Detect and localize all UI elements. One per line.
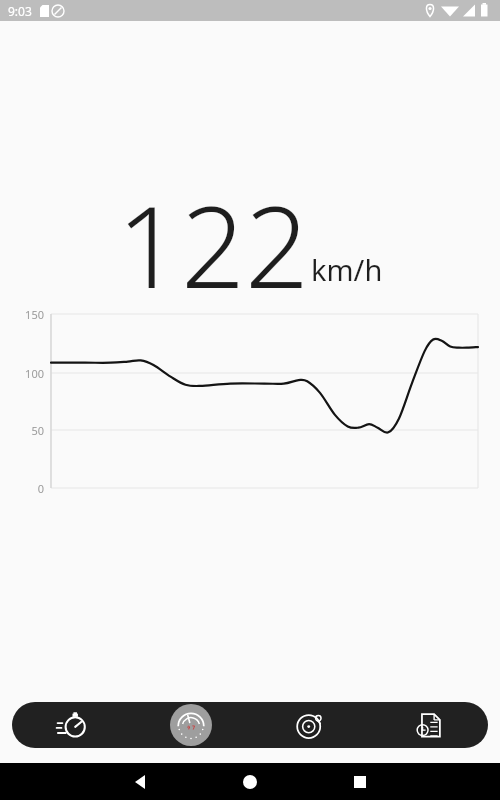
- button[interactable]: Timer: [12, 702, 131, 748]
- staticText: 100: [25, 366, 44, 380]
- staticText: 9:03: [8, 3, 32, 19]
- staticText: 150: [25, 307, 44, 321]
- staticText: 0: [37, 481, 44, 495]
- button[interactable]: History: [369, 702, 488, 748]
- button[interactable]: Speedometer: [131, 702, 250, 748]
- staticText: 50: [31, 423, 44, 437]
- staticText: 122: [117, 168, 309, 298]
- staticText: km/h: [311, 250, 383, 289]
- button[interactable]: Dial: [250, 702, 369, 748]
